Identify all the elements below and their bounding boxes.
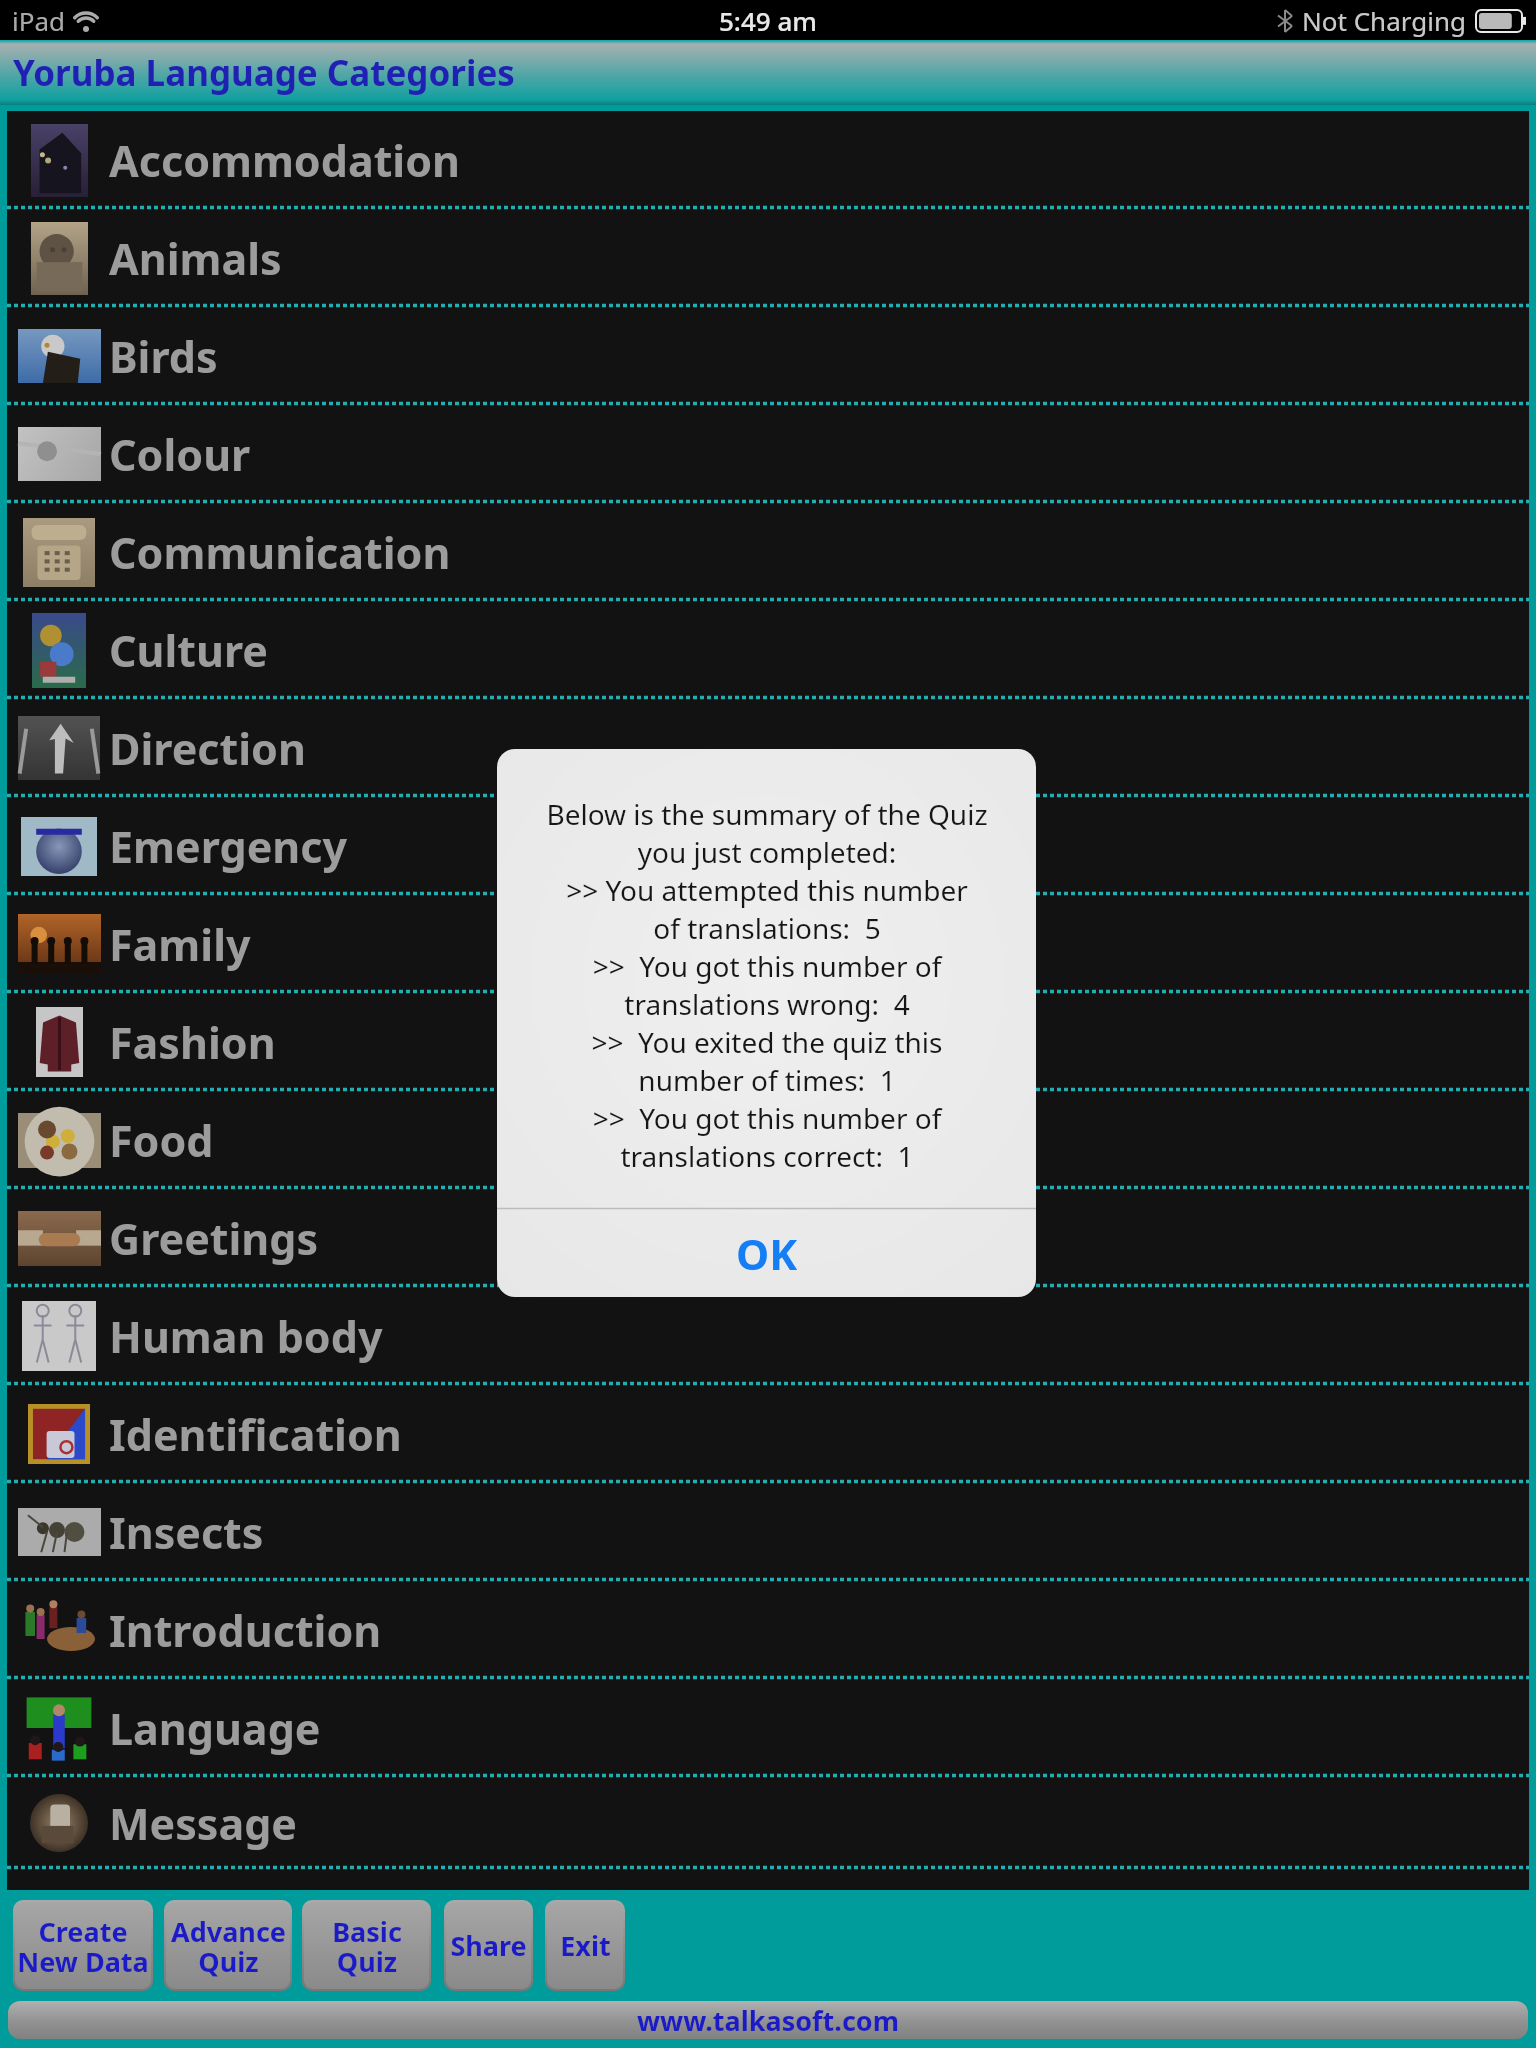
button[interactable]: Identification	[7, 1385, 1529, 1483]
staticText: OK	[736, 1225, 798, 1282]
staticText: Exit	[560, 1927, 611, 1964]
button[interactable]: Colour	[7, 405, 1529, 503]
button[interactable]: Exit	[547, 1902, 623, 1989]
button[interactable]: Language	[7, 1679, 1529, 1777]
staticText: Share	[450, 1927, 527, 1964]
button[interactable]: Create New Data	[15, 1902, 151, 1989]
staticText: Advance Quiz	[171, 1913, 286, 1979]
button[interactable]: Emergency	[7, 797, 1529, 895]
button[interactable]: Animals	[7, 209, 1529, 307]
button[interactable]: Message	[7, 1777, 1529, 1869]
staticText: Direction	[109, 719, 306, 778]
staticText: 5:49 am	[719, 3, 817, 38]
staticText: Yoruba Language Categories	[13, 49, 515, 97]
button[interactable]: Advance Quiz	[166, 1902, 290, 1989]
button[interactable]: Introduction	[7, 1581, 1529, 1679]
button[interactable]: Human body	[7, 1287, 1529, 1385]
staticText: Culture	[109, 621, 269, 680]
staticText: Accommodation	[109, 131, 461, 190]
staticText: Insects	[109, 1503, 264, 1562]
button[interactable]: Communication	[7, 503, 1529, 601]
staticText: Message	[109, 1794, 297, 1853]
staticText: Emergency	[109, 817, 348, 876]
staticText: Introduction	[109, 1601, 382, 1660]
button[interactable]: www.talkasoft.com	[8, 2001, 1528, 2039]
button[interactable]: Accommodation	[7, 111, 1529, 209]
staticText: Birds	[109, 327, 218, 386]
button[interactable]: Birds	[7, 307, 1529, 405]
staticText: www.talkasoft.com	[637, 2002, 900, 2039]
staticText: Create New Data	[17, 1913, 149, 1979]
staticText: Communication	[109, 523, 451, 582]
button[interactable]: Direction	[7, 699, 1529, 797]
button[interactable]: Insects	[7, 1483, 1529, 1581]
button[interactable]: Culture	[7, 601, 1529, 699]
staticText: iPad	[12, 3, 66, 38]
staticText: Below is the summary of the Quiz you jus…	[546, 795, 988, 1175]
staticText: Family	[109, 915, 251, 974]
button[interactable]: OK	[497, 1209, 1036, 1297]
staticText: Fashion	[109, 1013, 276, 1072]
staticText: Food	[109, 1111, 214, 1170]
staticText: Greetings	[109, 1209, 319, 1268]
staticText: Animals	[109, 229, 282, 288]
button[interactable]: Food	[7, 1091, 1529, 1189]
staticText: Not Charging	[1302, 3, 1466, 38]
staticText: Colour	[109, 425, 251, 484]
staticText: Human body	[109, 1307, 383, 1366]
staticText: Identification	[109, 1405, 402, 1464]
button[interactable]: Share	[446, 1902, 531, 1989]
button[interactable]: Fashion	[7, 993, 1529, 1091]
staticText: Language	[109, 1699, 321, 1758]
button[interactable]: Basic Quiz	[304, 1902, 429, 1989]
staticText: Basic Quiz	[332, 1913, 402, 1979]
button[interactable]: Greetings	[7, 1189, 1529, 1287]
button[interactable]: Family	[7, 895, 1529, 993]
